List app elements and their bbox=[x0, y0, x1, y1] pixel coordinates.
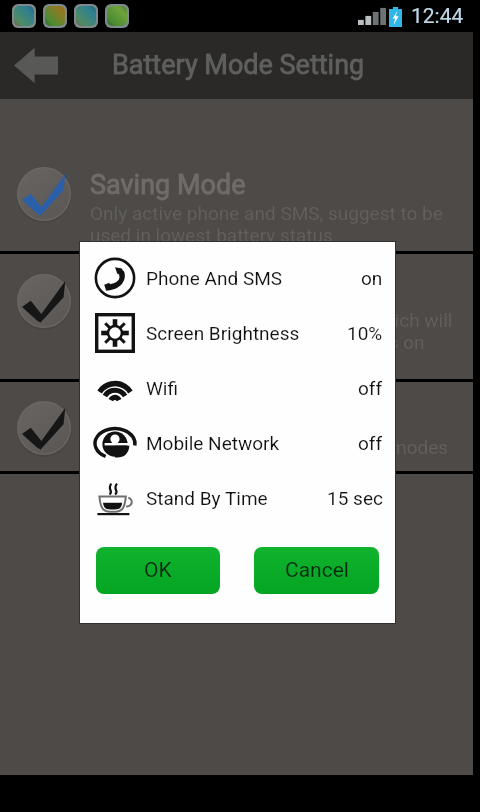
staticText: 12:44 bbox=[411, 4, 464, 29]
staticText: Phone And SMS bbox=[146, 267, 358, 289]
staticText: Standard mode of battery usage, which wi… bbox=[90, 309, 453, 331]
staticText: Normal Mode bbox=[90, 276, 254, 308]
staticText: used in lowest battery status bbox=[90, 224, 333, 246]
staticText: Battery Mode Setting bbox=[112, 49, 365, 81]
button[interactable]: Cancel bbox=[254, 547, 379, 594]
staticText: Mobile Network bbox=[146, 432, 355, 454]
staticText: 15 sec bbox=[327, 487, 383, 509]
button[interactable]: Saving Mode bbox=[0, 99, 473, 251]
button[interactable]: Stand By Time bbox=[80, 470, 395, 525]
staticText: 10% bbox=[347, 322, 383, 344]
staticText: Cancel bbox=[285, 558, 349, 583]
staticText: keep wifi and mobile network always on bbox=[90, 331, 425, 353]
button[interactable]: Phone And SMS bbox=[80, 250, 395, 305]
staticText: Screen Brightness bbox=[146, 322, 344, 344]
button[interactable]: Back bbox=[0, 32, 72, 99]
staticText: Wifi bbox=[146, 377, 355, 399]
button[interactable]: Normal Mode bbox=[0, 254, 473, 379]
button[interactable]: Wifi bbox=[80, 360, 395, 415]
staticText: Customize your own battery saving modes bbox=[90, 436, 449, 458]
button[interactable]: Screen Brightness bbox=[80, 305, 395, 360]
staticText: off bbox=[358, 377, 383, 399]
button[interactable]: Customize Mode bbox=[0, 382, 473, 471]
staticText: Saving Mode bbox=[90, 169, 246, 201]
staticText: Only active phone and SMS, suggest to be bbox=[90, 202, 443, 224]
staticText: Customize Mode bbox=[90, 403, 294, 435]
staticText: OK bbox=[144, 558, 172, 583]
staticText: on bbox=[361, 267, 383, 289]
button[interactable]: Mobile Network bbox=[80, 415, 395, 470]
staticText: Stand By Time bbox=[146, 487, 324, 509]
button[interactable]: OK bbox=[96, 547, 220, 594]
staticText: off bbox=[358, 432, 383, 454]
